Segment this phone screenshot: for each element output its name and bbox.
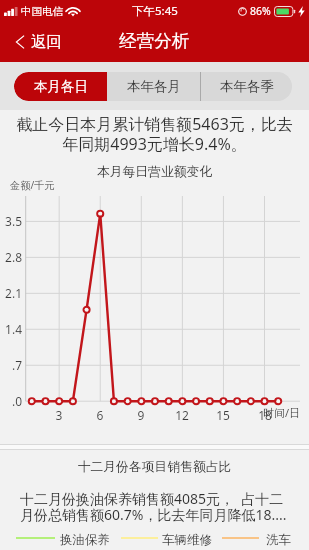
staticText: 下午5:45 xyxy=(132,3,178,19)
staticText: 本年各月 xyxy=(127,78,181,95)
staticText: 2.1 xyxy=(0,285,22,301)
staticText: 1.4 xyxy=(0,321,22,337)
staticText: 换油保养 xyxy=(60,532,110,548)
button[interactable]: 本月各日 xyxy=(14,72,107,101)
staticText: 6 xyxy=(90,407,110,423)
staticText: 十二月份各项目销售额占比 xyxy=(0,459,309,475)
staticText: 洗车 xyxy=(266,532,291,548)
staticText: 2.8 xyxy=(0,249,22,265)
staticText: 截止今日本月累计销售额5463元，比去年同期4993元增长9.4%。 xyxy=(12,113,297,155)
staticText: 3.5 xyxy=(0,213,22,229)
button[interactable]: 本年各季 xyxy=(201,72,292,101)
staticText: 本月各日 xyxy=(34,78,88,95)
staticText: 经营分析 xyxy=(119,30,190,52)
staticText: 金额/千元 xyxy=(10,178,55,192)
staticText: 十二月份换油保养销售额4085元， 占十二月份总销售额60.7%，比去年同月降低… xyxy=(20,489,289,524)
staticText: .7 xyxy=(0,357,22,373)
staticText: 中国电信 xyxy=(21,5,63,18)
button[interactable]: 返回 xyxy=(16,32,62,52)
staticText: 9 xyxy=(131,407,151,423)
staticText: 12 xyxy=(172,407,192,423)
staticText: 本月每日营业额变化 xyxy=(0,164,309,180)
staticText: 本年各季 xyxy=(220,78,274,95)
staticText: 18 xyxy=(255,407,275,423)
staticText: 15 xyxy=(213,407,233,423)
button[interactable]: 本年各月 xyxy=(107,72,200,101)
staticText: 时间/日 xyxy=(263,405,301,420)
staticText: 返回 xyxy=(31,32,62,52)
staticText: .0 xyxy=(0,393,22,409)
staticText: 3 xyxy=(49,407,69,423)
staticText: 车辆维修 xyxy=(162,532,212,548)
staticText: 86% xyxy=(250,4,271,18)
